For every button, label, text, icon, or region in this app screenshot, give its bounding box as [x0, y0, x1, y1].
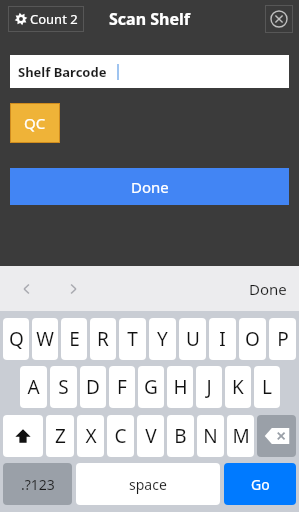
button[interactable]: I [209, 318, 236, 360]
button[interactable]: space [76, 463, 220, 505]
staticText: L [262, 374, 272, 400]
staticText: W [36, 326, 54, 352]
staticText: F [117, 374, 127, 400]
staticText: QC [24, 113, 46, 133]
staticText: T [127, 326, 138, 352]
staticText: X [85, 423, 97, 449]
button[interactable]: Done [237, 273, 299, 305]
staticText: Done [249, 279, 287, 299]
button[interactable]: QC [10, 103, 60, 143]
staticText: M [232, 423, 250, 449]
button[interactable]: Y [149, 318, 176, 360]
staticText: A [27, 374, 40, 400]
staticText: space [129, 475, 167, 494]
staticText: S [58, 374, 69, 400]
staticText: H [173, 374, 188, 400]
button[interactable]: R [90, 318, 116, 360]
button[interactable]: .?123 [3, 463, 72, 505]
staticText: E [69, 326, 80, 352]
button[interactable]: D [80, 366, 106, 408]
staticText: D [86, 374, 100, 400]
button[interactable]: W [32, 318, 58, 360]
button[interactable]: Shelf Barcode [10, 55, 289, 88]
staticText: Shelf Barcode [18, 63, 107, 81]
button[interactable]: U [179, 318, 206, 360]
staticText: R [97, 326, 109, 352]
button[interactable]: S [50, 366, 77, 408]
button[interactable]: B [167, 415, 194, 457]
button[interactable]: Z [46, 415, 74, 457]
button[interactable]: P [269, 318, 296, 360]
staticText: U [186, 326, 200, 352]
button[interactable]: Count 2 [8, 6, 84, 32]
staticText: G [144, 374, 158, 400]
button[interactable]: V [137, 415, 164, 457]
button[interactable]: A [20, 366, 47, 408]
staticText: Count 2 [30, 10, 78, 28]
button[interactable]: F [109, 366, 135, 408]
button[interactable]: T [119, 318, 146, 360]
button[interactable]: K [225, 366, 251, 408]
staticText: J [206, 374, 212, 400]
button[interactable]: Go [224, 463, 296, 505]
staticText: Done [131, 177, 169, 197]
staticText: Z [55, 423, 66, 449]
button[interactable]: N [197, 415, 224, 457]
button[interactable]: M [227, 415, 254, 457]
button[interactable]: Backspace [257, 415, 296, 457]
staticText: .?123 [21, 475, 55, 494]
button[interactable]: C [107, 415, 134, 457]
button[interactable]: Shift [3, 415, 43, 457]
button[interactable]: Next field [58, 274, 88, 304]
button[interactable]: Q [3, 318, 29, 360]
button[interactable]: Previous field [12, 274, 42, 304]
staticText: N [203, 423, 218, 449]
staticText: P [277, 326, 289, 352]
staticText: K [232, 374, 244, 400]
staticText: V [145, 423, 157, 449]
button[interactable]: H [167, 366, 193, 408]
button[interactable]: Close [265, 5, 293, 33]
staticText: Scan Shelf [109, 8, 190, 30]
button[interactable]: L [254, 366, 280, 408]
staticText: B [174, 423, 187, 449]
button[interactable]: X [77, 415, 104, 457]
button[interactable]: G [138, 366, 164, 408]
staticText: Q [9, 326, 24, 352]
button[interactable]: Done [10, 168, 289, 205]
button[interactable]: J [196, 366, 222, 408]
staticText: O [245, 326, 260, 352]
button[interactable]: O [239, 318, 266, 360]
button[interactable]: E [61, 318, 87, 360]
staticText: Y [157, 326, 168, 352]
staticText: I [219, 326, 226, 352]
staticText: Go [251, 475, 270, 494]
staticText: C [114, 423, 127, 449]
